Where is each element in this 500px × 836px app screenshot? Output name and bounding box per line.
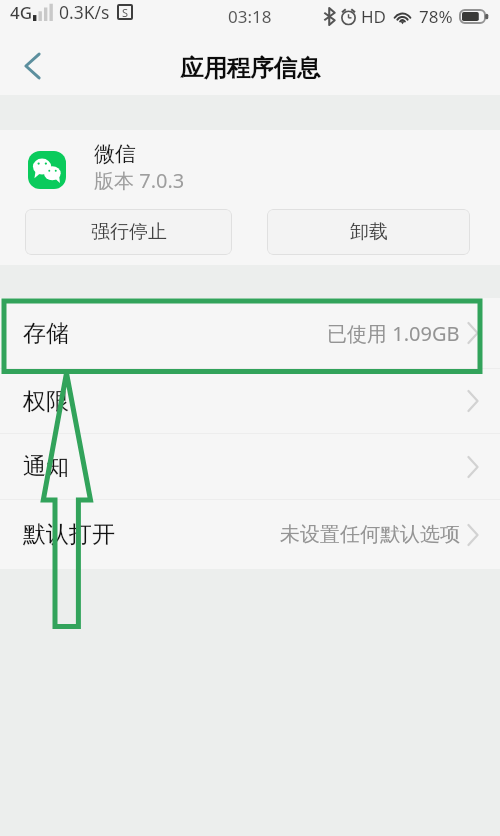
staticText: 4G xyxy=(10,1,33,24)
staticText: 默认打开 xyxy=(23,520,115,549)
staticText: 78% xyxy=(419,5,453,28)
staticText: 未设置任何默认选项 xyxy=(280,522,460,547)
staticText: 强行停止 xyxy=(91,220,167,244)
button[interactable]: 卸载 xyxy=(267,209,470,255)
staticText: 03:18 xyxy=(228,5,272,28)
staticText: 应用程序信息 xyxy=(180,53,321,82)
staticText: 权限 xyxy=(23,387,69,416)
staticText: HD xyxy=(361,5,387,28)
staticText: 0.3K/s xyxy=(59,0,110,24)
staticText: S xyxy=(122,5,129,20)
button[interactable]: 权限 xyxy=(0,369,500,433)
staticText: 微信 xyxy=(94,141,136,167)
staticText: 版本 7.0.3 xyxy=(94,167,185,194)
button[interactable]: 默认打开 xyxy=(0,500,500,569)
button[interactable]: 存储 xyxy=(0,298,500,368)
button[interactable]: Back xyxy=(0,33,64,95)
button[interactable]: 通知 xyxy=(0,434,500,499)
staticText: 存储 xyxy=(23,319,69,348)
staticText: 卸载 xyxy=(350,220,388,244)
button[interactable]: 强行停止 xyxy=(25,209,232,255)
staticText: 通知 xyxy=(23,452,69,481)
staticText: 已使用 1.09GB xyxy=(327,320,460,347)
